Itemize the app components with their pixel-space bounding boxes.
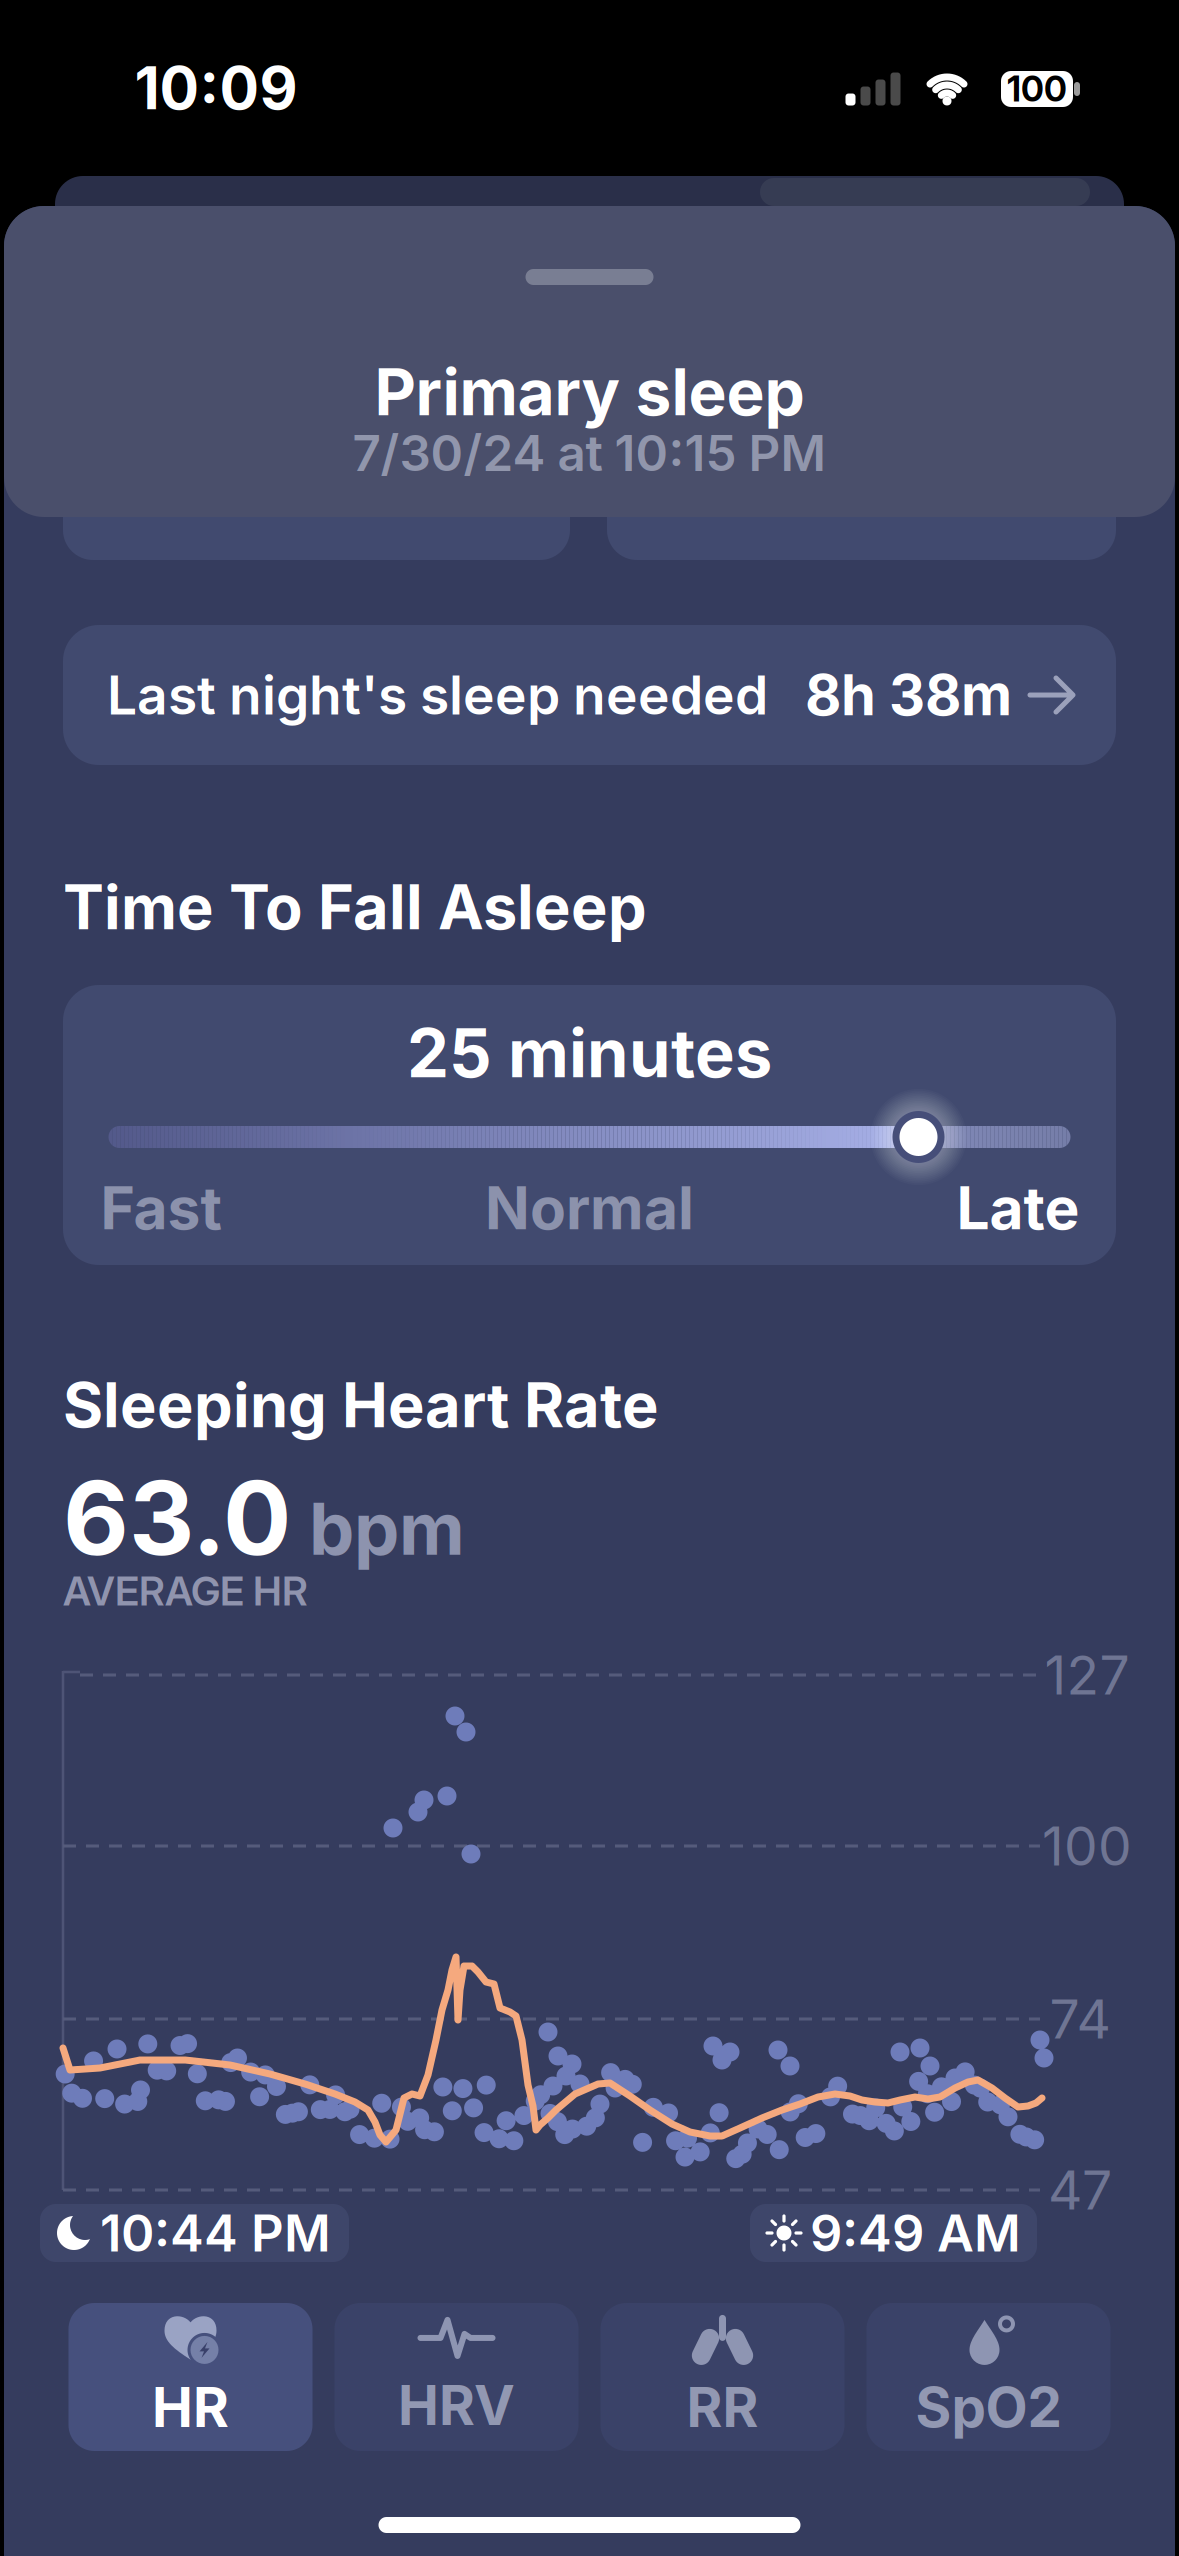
staticText: Normal	[485, 1172, 694, 1243]
staticText: AVERAGE HR	[63, 1567, 308, 1615]
button[interactable]: RR	[600, 2303, 844, 2451]
staticText: Late	[956, 1172, 1079, 1243]
staticText: bpm	[309, 1485, 465, 1572]
staticText: 7/30/24 at 10:15 PM	[352, 423, 826, 483]
button[interactable]: SpO2	[866, 2303, 1110, 2451]
staticText: 63.0	[63, 1457, 291, 1579]
staticText: SpO2	[915, 2374, 1061, 2440]
staticText: 47	[1048, 2158, 1112, 2222]
staticText: 10:44 PM	[100, 2202, 331, 2264]
staticText: 127	[1044, 1643, 1129, 1707]
staticText: 9:49 AM	[810, 2202, 1021, 2264]
staticText: Sleeping Heart Rate	[63, 1368, 659, 1442]
staticText: 8h 38m	[805, 661, 1012, 729]
button[interactable]: HR	[68, 2303, 312, 2451]
staticText: 100	[1007, 68, 1067, 110]
staticText: Last night's sleep needed	[107, 663, 768, 727]
staticText: HR	[152, 2374, 229, 2440]
staticText: Fast	[100, 1172, 221, 1243]
staticText: 10:09	[134, 52, 297, 123]
staticText: 100	[1042, 1814, 1132, 1878]
staticText: Time To Fall Asleep	[63, 870, 647, 944]
staticText: Primary sleep	[374, 353, 804, 431]
button[interactable]: Last night's sleep needed	[63, 625, 1116, 765]
staticText: HRV	[398, 2372, 515, 2438]
button[interactable]	[108, 1126, 1070, 1148]
staticText: RR	[686, 2374, 758, 2440]
staticText: 25 minutes	[407, 1013, 772, 1093]
staticText: 74	[1049, 1987, 1110, 2051]
button[interactable]: HRV	[334, 2303, 578, 2451]
